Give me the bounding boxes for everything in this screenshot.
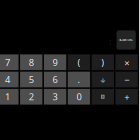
staticText: 3 <box>53 90 58 103</box>
staticText: + <box>124 91 129 103</box>
button[interactable]: SCIENTIFIC <box>117 30 136 50</box>
button[interactable]: ) <box>92 54 114 70</box>
staticText: 0 <box>76 90 81 103</box>
button[interactable]: 7 <box>0 54 19 70</box>
staticText: ÷ <box>100 74 105 86</box>
button[interactable]: + <box>115 89 138 105</box>
button[interactable]: 3 <box>44 89 66 105</box>
staticText: 2 <box>29 90 34 103</box>
button[interactable]: Equals <box>92 89 114 105</box>
button[interactable]: − <box>115 72 138 87</box>
button[interactable]: 4 <box>0 72 19 87</box>
staticText: 5 <box>29 73 34 86</box>
staticText: ) <box>101 56 104 68</box>
staticText: 6 <box>53 73 58 86</box>
staticText: 4 <box>5 73 10 86</box>
button[interactable]: 2 <box>20 89 42 105</box>
staticText: . <box>77 73 80 86</box>
button[interactable]: 9 <box>44 54 66 70</box>
staticText: − <box>124 74 129 86</box>
staticText: ( <box>77 56 80 68</box>
button[interactable]: 6 <box>44 72 66 87</box>
staticText: 8 <box>29 56 34 68</box>
staticText: × <box>124 57 129 69</box>
staticText: 1 <box>5 90 10 103</box>
button[interactable]: ÷ <box>92 72 114 87</box>
button[interactable]: 8 <box>20 54 42 70</box>
button[interactable]: 0 <box>68 89 90 105</box>
staticText: 7 <box>5 56 10 68</box>
staticText: 9 <box>53 56 58 68</box>
button[interactable]: × <box>115 54 138 70</box>
button[interactable]: 1 <box>0 89 19 105</box>
button[interactable]: 5 <box>20 72 42 87</box>
button[interactable]: . <box>68 72 90 87</box>
button[interactable]: ( <box>68 54 90 70</box>
staticText: SCIENTIFIC <box>119 38 133 42</box>
